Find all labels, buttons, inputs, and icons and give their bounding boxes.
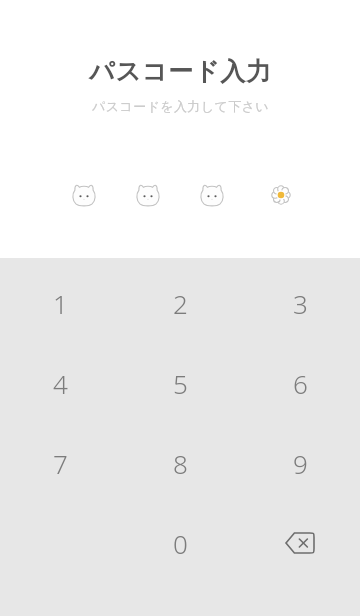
- button[interactable]: 7: [0, 423, 120, 503]
- button[interactable]: 4: [0, 343, 120, 423]
- button[interactable]: 6: [240, 343, 360, 423]
- staticText: 5: [173, 366, 188, 401]
- staticText: 4: [53, 366, 68, 401]
- staticText: 3: [293, 286, 308, 321]
- staticText: 7: [53, 446, 68, 481]
- staticText: 2: [173, 286, 188, 321]
- button[interactable]: Delete: [240, 503, 360, 583]
- button[interactable]: 0: [120, 503, 240, 583]
- staticText: 0: [173, 526, 188, 561]
- button[interactable]: 8: [120, 423, 240, 503]
- button[interactable]: 9: [240, 423, 360, 503]
- staticText: パスコードを入力して下さい: [92, 98, 269, 114]
- button[interactable]: 5: [120, 343, 240, 423]
- staticText: 9: [293, 446, 308, 481]
- staticText: 8: [173, 446, 188, 481]
- button[interactable]: 2: [120, 263, 240, 343]
- staticText: パスコード入力: [89, 56, 272, 87]
- button[interactable]: 1: [0, 263, 120, 343]
- staticText: 6: [293, 366, 308, 401]
- button[interactable]: 3: [240, 263, 360, 343]
- staticText: 1: [53, 286, 68, 321]
